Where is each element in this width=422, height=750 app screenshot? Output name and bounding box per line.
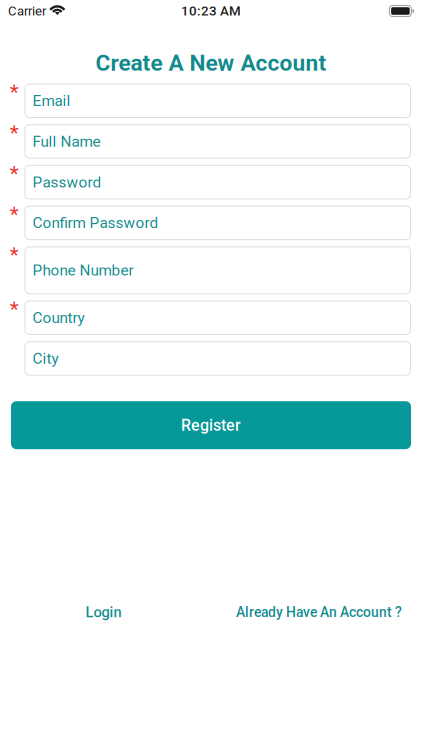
staticText: City (32, 349, 58, 367)
staticText: Carrier (8, 3, 46, 19)
staticText: Full Name (32, 132, 100, 150)
staticText: * (10, 202, 19, 227)
staticText: 10:23 AM (181, 3, 241, 19)
button[interactable]: Full Name (25, 125, 410, 158)
staticText: Register (181, 416, 241, 435)
staticText: Password (32, 173, 101, 191)
staticText: * (10, 80, 19, 105)
staticText: Confirm Password (32, 214, 158, 232)
button[interactable]: Login (0, 602, 207, 622)
button[interactable]: Phone Number (25, 247, 410, 294)
staticText: Phone Number (32, 261, 133, 279)
button[interactable]: Already Have An Account ? (216, 602, 422, 622)
staticText: Already Have An Account ? (236, 604, 402, 620)
staticText: Email (32, 92, 70, 110)
button[interactable]: Email (25, 84, 410, 117)
staticText: Login (85, 604, 121, 621)
button[interactable]: Country (25, 301, 410, 334)
staticText: Create A New Account (95, 50, 326, 76)
button[interactable]: City (25, 342, 410, 375)
staticText: Country (32, 309, 84, 327)
button[interactable]: Register (11, 401, 411, 449)
button[interactable]: Password (25, 165, 410, 199)
staticText: * (10, 162, 19, 186)
button[interactable]: Confirm Password (25, 206, 410, 240)
staticText: * (10, 297, 19, 322)
staticText: * (10, 243, 19, 267)
staticText: * (10, 121, 19, 145)
